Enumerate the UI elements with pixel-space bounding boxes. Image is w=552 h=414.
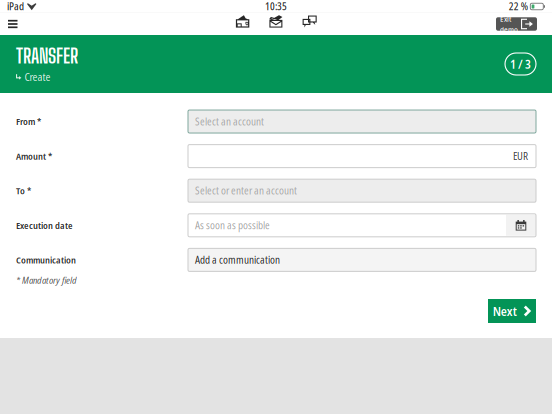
button[interactable]: Exit demo [496,17,537,31]
staticText: EUR [513,149,528,163]
staticText: 1 / 3 [510,56,531,72]
staticText: TRANSFER [16,44,78,68]
staticText: 10:35 [265,0,287,13]
staticText: Select an account [195,115,264,128]
staticText: Communication [16,253,76,266]
staticText: 22 % [509,0,528,13]
staticText: Execution date [16,219,73,232]
button[interactable]: Transfers [264,13,288,30]
staticText: Next [493,302,517,320]
button[interactable]: Next [488,299,536,323]
button[interactable]: Accounts [230,13,254,30]
staticText: Exit [500,13,511,24]
button[interactable]: Messages [297,13,322,30]
staticText: Create [24,70,50,84]
staticText: To * [16,184,31,197]
staticText: Amount * [16,150,52,162]
staticText: iPad [7,0,24,13]
staticText: As soon as possible [195,218,270,232]
staticText: demo [500,24,518,34]
staticText: Add a communication [195,253,280,267]
button[interactable]: Pick a date [506,215,536,236]
button[interactable]: Menu [2,15,23,33]
staticText: Select or enter an account [195,184,297,197]
button[interactable]: Add a communication [188,248,536,271]
staticText: * Mandatory field [16,273,77,286]
staticText: From * [16,115,41,128]
